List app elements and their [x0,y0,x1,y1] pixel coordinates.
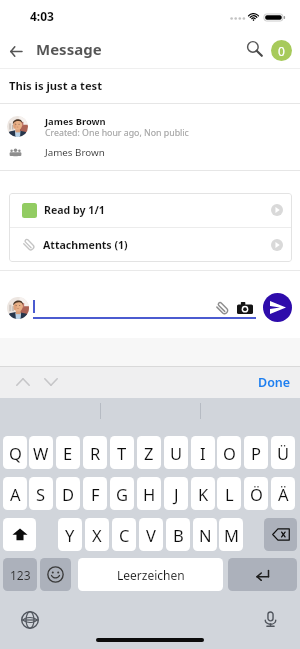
staticText: O [223,442,236,464]
staticText: I [200,442,206,464]
staticText: N [199,524,212,546]
staticText: Read by 1/1 [44,203,105,217]
button[interactable]: Ü [271,436,295,469]
staticText: C [119,524,130,546]
button[interactable]: Return [228,558,297,591]
button[interactable]: Done [252,369,297,396]
button[interactable]: T [110,436,134,469]
button[interactable]: E [56,436,80,469]
staticText: F [91,483,100,505]
staticText: S [36,483,46,505]
staticText: K [198,483,209,505]
button[interactable]: K [191,477,215,510]
button[interactable]: J [164,477,188,510]
button[interactable]: Z [137,436,161,469]
staticText: A [10,483,21,505]
button[interactable]: O [217,436,241,469]
button[interactable]: M [219,518,243,551]
staticText: V [146,524,156,546]
button[interactable]: Attach file [213,299,231,317]
staticText: U [170,442,183,464]
button[interactable]: Shift [3,518,36,551]
staticText: M [224,524,239,546]
button[interactable]: 0 [271,40,292,61]
button[interactable]: V [139,518,163,551]
button[interactable]: Previous field [13,372,33,392]
staticText: Z [144,442,154,464]
staticText: E [63,442,73,464]
button[interactable]: B [166,518,190,551]
button[interactable]: H [137,477,161,510]
staticText: 123 [10,567,31,583]
button[interactable]: L [217,477,241,510]
button[interactable]: Y [58,518,82,551]
button[interactable]: I [191,436,215,469]
button[interactable]: X [85,518,109,551]
staticText: Ä [278,483,289,505]
staticText: 0 [278,43,285,59]
button[interactable]: Back [4,39,28,63]
button[interactable]: Search [243,37,267,61]
button[interactable]: Ä [271,477,295,510]
staticText: Message [36,39,102,59]
button[interactable]: S [29,477,53,510]
button[interactable]: D [56,477,80,510]
button[interactable]: C [112,518,136,551]
staticText: J [174,483,179,505]
staticText: D [62,483,75,505]
staticText: Q [9,442,22,464]
staticText: W [33,442,49,464]
staticText: Attachments (1) [43,238,128,252]
button[interactable]: Q [3,436,27,469]
button[interactable]: Change keyboard [19,609,41,631]
button[interactable]: P [244,436,268,469]
staticText: T [117,442,127,464]
staticText: H [143,483,156,505]
button[interactable]: Send [263,293,292,322]
button[interactable]: N [193,518,217,551]
staticText: Ö [250,483,263,505]
button[interactable]: Dictation [259,608,281,630]
staticText: X [92,524,102,546]
staticText: G [116,483,129,505]
button[interactable]: G [110,477,134,510]
staticText: James Brown [45,146,105,159]
staticText: L [225,483,234,505]
staticText: Created: One hour ago, Non public [45,127,189,139]
staticText: B [173,524,184,546]
button[interactable]: 123 [3,558,37,591]
button[interactable]: U [164,436,188,469]
button[interactable]: Emoji [40,558,71,591]
staticText: 4:03 [30,8,54,24]
staticText: This is just a test [9,78,103,93]
button[interactable]: Next field [41,372,61,392]
button[interactable]: R [83,436,107,469]
button[interactable]: A [3,477,27,510]
button[interactable]: Camera [236,299,254,317]
staticText: P [251,442,261,464]
staticText: Leerzeichen [117,567,185,583]
button[interactable]: Read by 1/1 [9,193,292,227]
button[interactable]: W [29,436,53,469]
staticText: Ü [277,442,290,464]
button[interactable]: Ö [244,477,268,510]
button[interactable]: Backspace [264,518,297,551]
button[interactable]: F [83,477,107,510]
staticText: Y [65,524,75,546]
staticText: R [90,442,101,464]
staticText: Done [258,374,291,391]
button[interactable]: Attachments (1) [9,228,292,262]
button[interactable]: Leerzeichen [78,558,223,591]
staticText: James Brown [45,115,106,128]
